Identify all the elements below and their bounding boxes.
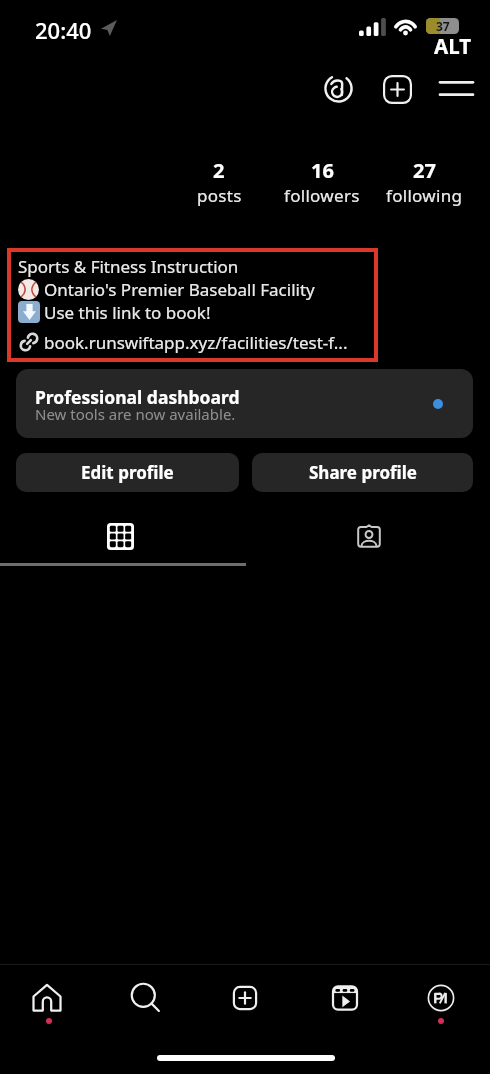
button[interactable]: Posts grid: [0, 512, 245, 560]
button[interactable]: Share profile: [252, 453, 473, 492]
staticText: Professional dashboard: [35, 385, 240, 409]
button[interactable]: Profile: [392, 965, 490, 1037]
staticText: Sports & Fitness Instruction: [18, 255, 239, 278]
button[interactable]: Search: [98, 965, 196, 1037]
staticText: 20:40: [35, 15, 92, 45]
staticText: book.runswiftapp.xyz/facilities/test-f..…: [44, 331, 348, 353]
staticText: New tools are now available.: [35, 404, 236, 424]
staticText: 37: [436, 18, 450, 34]
staticText: following: [386, 184, 463, 207]
button[interactable]: 2: [164, 157, 274, 209]
button[interactable]: 27: [369, 157, 479, 209]
staticText: 16: [311, 157, 334, 184]
button[interactable]: Home: [0, 965, 98, 1037]
button[interactable]: Edit profile: [16, 453, 239, 492]
button[interactable]: book.runswiftapp.xyz/facilities/test-f..…: [17, 331, 348, 353]
staticText: Use this link to book!: [44, 301, 211, 323]
staticText: Share profile: [309, 461, 417, 484]
staticText: Edit profile: [81, 461, 174, 484]
button[interactable]: 16: [267, 157, 377, 209]
staticText: ALT: [434, 32, 472, 60]
button[interactable]: Threads: [315, 65, 361, 111]
button[interactable]: Professional dashboard: [16, 369, 473, 438]
button[interactable]: Tagged: [245, 512, 490, 560]
staticText: posts: [197, 184, 242, 207]
staticText: Ontario's Premier Baseball Facility: [44, 278, 315, 300]
button[interactable]: Menu: [433, 65, 479, 111]
button[interactable]: Reels: [294, 965, 392, 1037]
staticText: followers: [284, 184, 360, 207]
staticText: 2: [213, 157, 225, 184]
button[interactable]: Create: [196, 965, 294, 1037]
staticText: 27: [413, 157, 436, 184]
button[interactable]: New post: [374, 66, 420, 112]
